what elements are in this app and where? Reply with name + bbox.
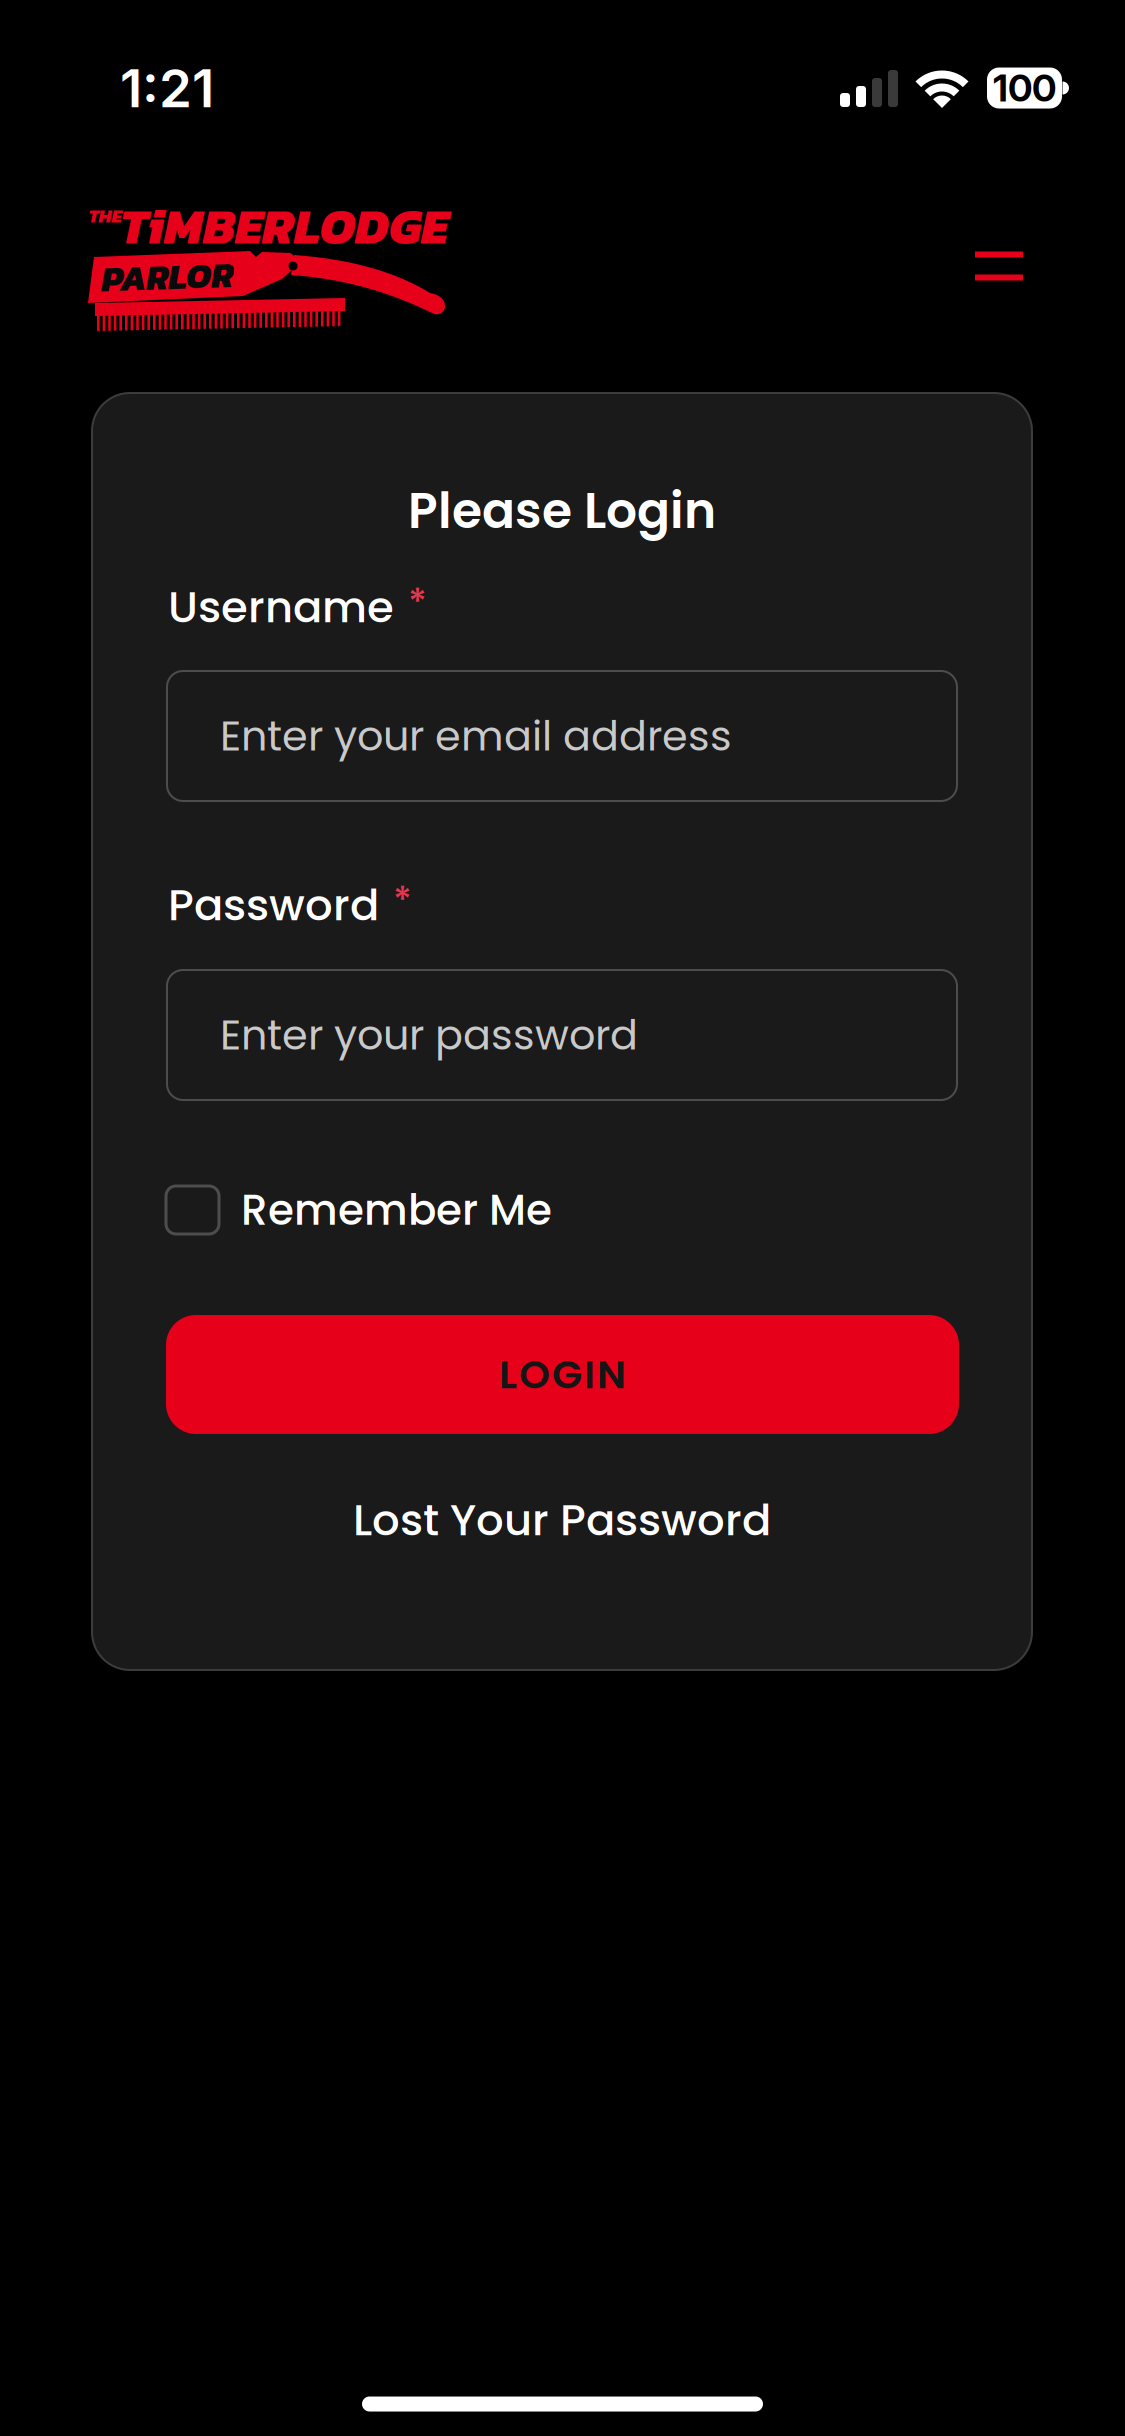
button[interactable]: Remember Me: [92, 1181, 1032, 1239]
button[interactable]: LOGIN: [166, 1315, 959, 1434]
staticText: PARLOR: [101, 251, 233, 303]
staticText: Please Login: [408, 477, 716, 545]
staticText: Password: [168, 875, 379, 935]
staticText: *: [408, 577, 427, 629]
staticText: THE: [88, 202, 121, 230]
staticText: TiMBERLODGE: [120, 189, 448, 263]
button[interactable]: Lost Your Password: [353, 1490, 771, 1550]
staticText: Lost Your Password: [353, 1490, 771, 1550]
button[interactable]: [975, 251, 1023, 280]
staticText: 100: [993, 65, 1056, 111]
staticText: LOGIN: [499, 1347, 626, 1402]
button[interactable]: Enter your email address: [167, 671, 957, 801]
button[interactable]: Enter your password: [167, 970, 957, 1100]
staticText: 1:21: [120, 56, 214, 120]
staticText: Enter your password: [220, 1006, 638, 1064]
staticText: Enter your email address: [220, 707, 732, 765]
staticText: Remember Me: [241, 1181, 552, 1239]
staticText: *: [393, 875, 412, 927]
staticText: Username: [168, 577, 394, 637]
